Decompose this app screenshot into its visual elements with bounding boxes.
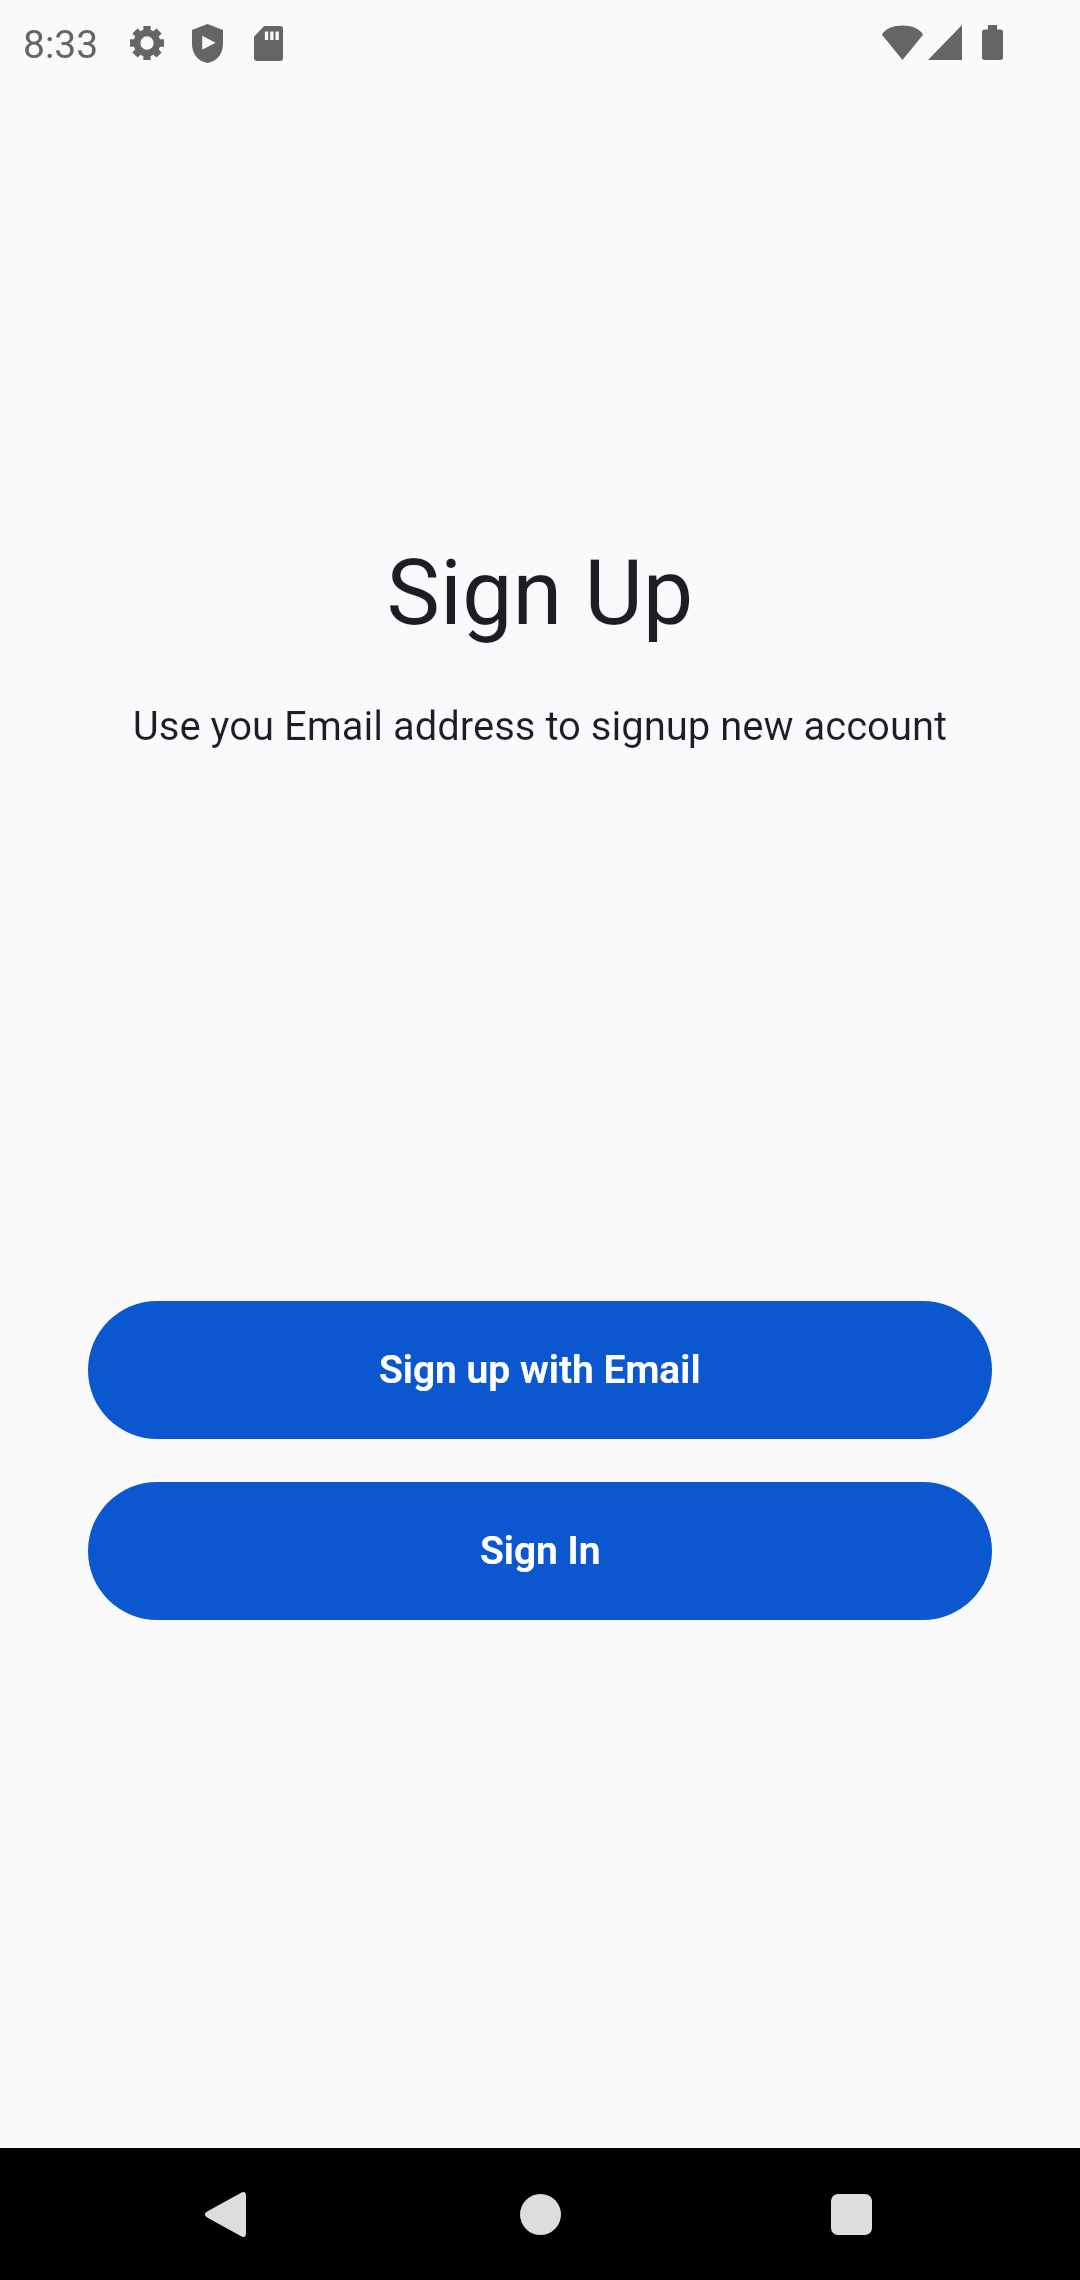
button[interactable]: Home [500, 2174, 580, 2254]
button[interactable]: Back [184, 2148, 264, 2280]
staticText: Sign In [480, 1528, 601, 1574]
staticText: 8:33 [23, 22, 99, 68]
button[interactable]: Recent apps [811, 2148, 891, 2280]
staticText: Sign Up [0, 541, 1080, 646]
staticText: Sign up with Email [379, 1347, 701, 1393]
button[interactable]: Sign In [88, 1482, 992, 1620]
button[interactable]: Sign up with Email [88, 1301, 992, 1439]
staticText: Use you Email address to signup new acco… [0, 703, 1080, 750]
